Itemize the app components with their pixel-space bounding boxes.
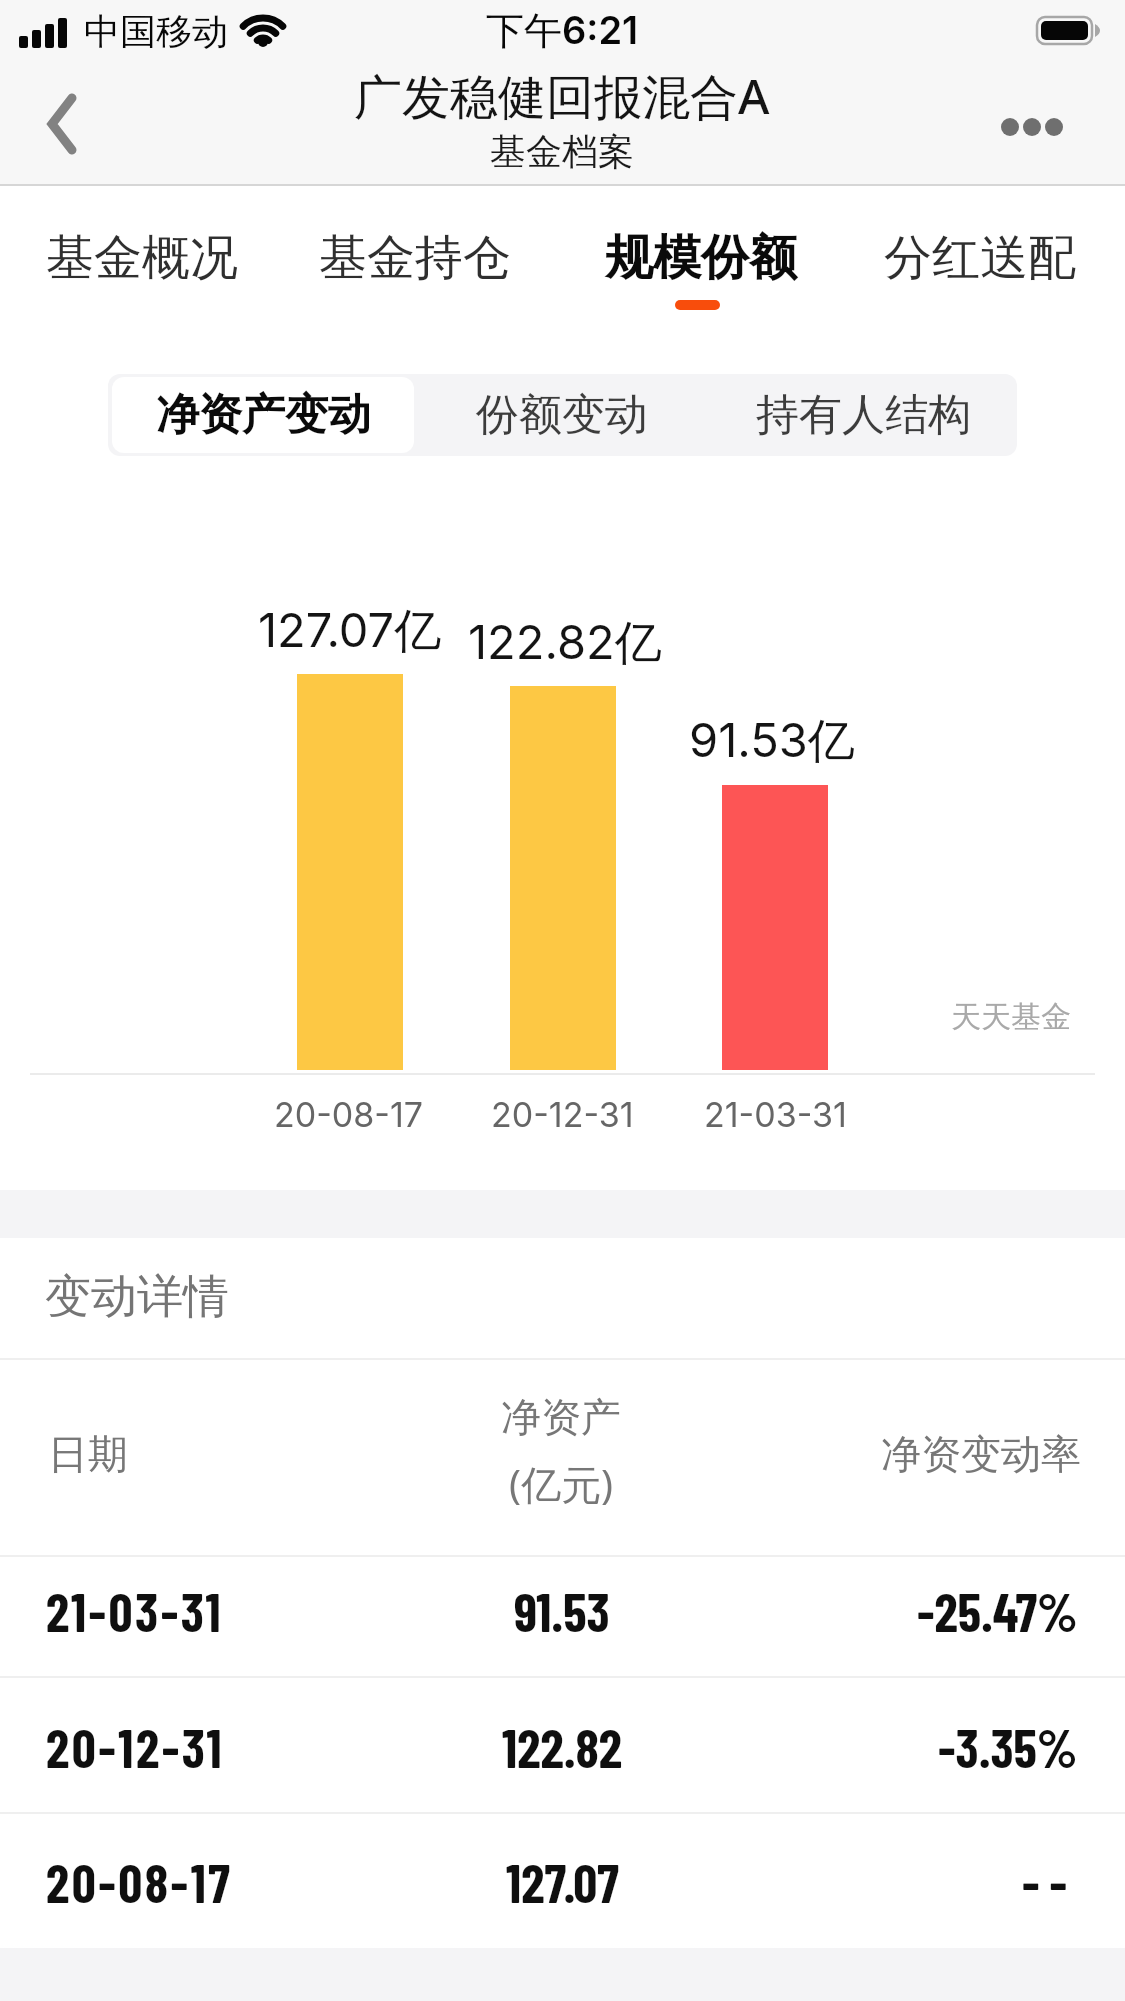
staticText: 20-12-31 <box>491 1094 634 1135</box>
button[interactable]: 基金持仓 <box>295 194 535 322</box>
button[interactable] <box>0 1815 1125 1949</box>
staticText: 持有人结构 <box>756 388 971 442</box>
staticText: -25.47% <box>917 1579 1078 1643</box>
staticText: 21-03-31 <box>704 1094 847 1135</box>
button[interactable] <box>0 1680 1125 1814</box>
staticText: 中国移动 <box>84 9 228 54</box>
staticText: 天天基金 <box>951 998 1071 1036</box>
staticText: 20-08-17 <box>274 1094 424 1135</box>
staticText: -3.35% <box>938 1715 1078 1779</box>
button[interactable]: 分红送配 <box>860 194 1100 322</box>
staticText: 净资产变动 <box>156 388 371 442</box>
button[interactable] <box>20 80 110 170</box>
button[interactable] <box>985 100 1075 156</box>
staticText: 份额变动 <box>476 388 648 442</box>
staticText: 日期 <box>48 1429 128 1479</box>
button[interactable]: 持有人结构 <box>709 377 1017 453</box>
staticText: 变动详情 <box>45 1268 229 1326</box>
staticText: 91.53亿 <box>689 711 855 770</box>
staticText: 广发稳健回报混合A <box>354 63 770 129</box>
button[interactable]: 规模份额 <box>581 194 821 322</box>
staticText: 20-12-31 <box>46 1715 225 1779</box>
staticText: 下午6:21 <box>486 7 639 55</box>
staticText: 127.07亿 <box>258 601 442 660</box>
staticText: 基金档案 <box>490 129 634 174</box>
staticText: 分红送配 <box>884 228 1076 288</box>
button[interactable]: 份额变动 <box>414 377 709 453</box>
staticText: 91.53 <box>514 1579 610 1643</box>
staticText: 基金概况 <box>46 228 238 288</box>
staticText: -- <box>1022 1850 1078 1914</box>
button[interactable] <box>0 1544 1125 1678</box>
staticText: 122.82亿 <box>468 613 662 672</box>
button[interactable]: 基金概况 <box>22 194 262 322</box>
staticText: 基金持仓 <box>319 228 511 288</box>
staticText: 净资变动率 <box>881 1429 1081 1479</box>
staticText: 20-08-17 <box>46 1850 233 1914</box>
staticText: 21-03-31 <box>46 1579 224 1643</box>
staticText: 122.82 <box>502 1715 623 1779</box>
staticText: 规模份额 <box>605 228 797 288</box>
staticText: 127.07 <box>506 1850 619 1914</box>
button[interactable]: 净资产变动 <box>112 377 414 453</box>
staticText: 净资产 <box>501 1392 621 1442</box>
staticText: (亿元) <box>509 1456 613 1511</box>
